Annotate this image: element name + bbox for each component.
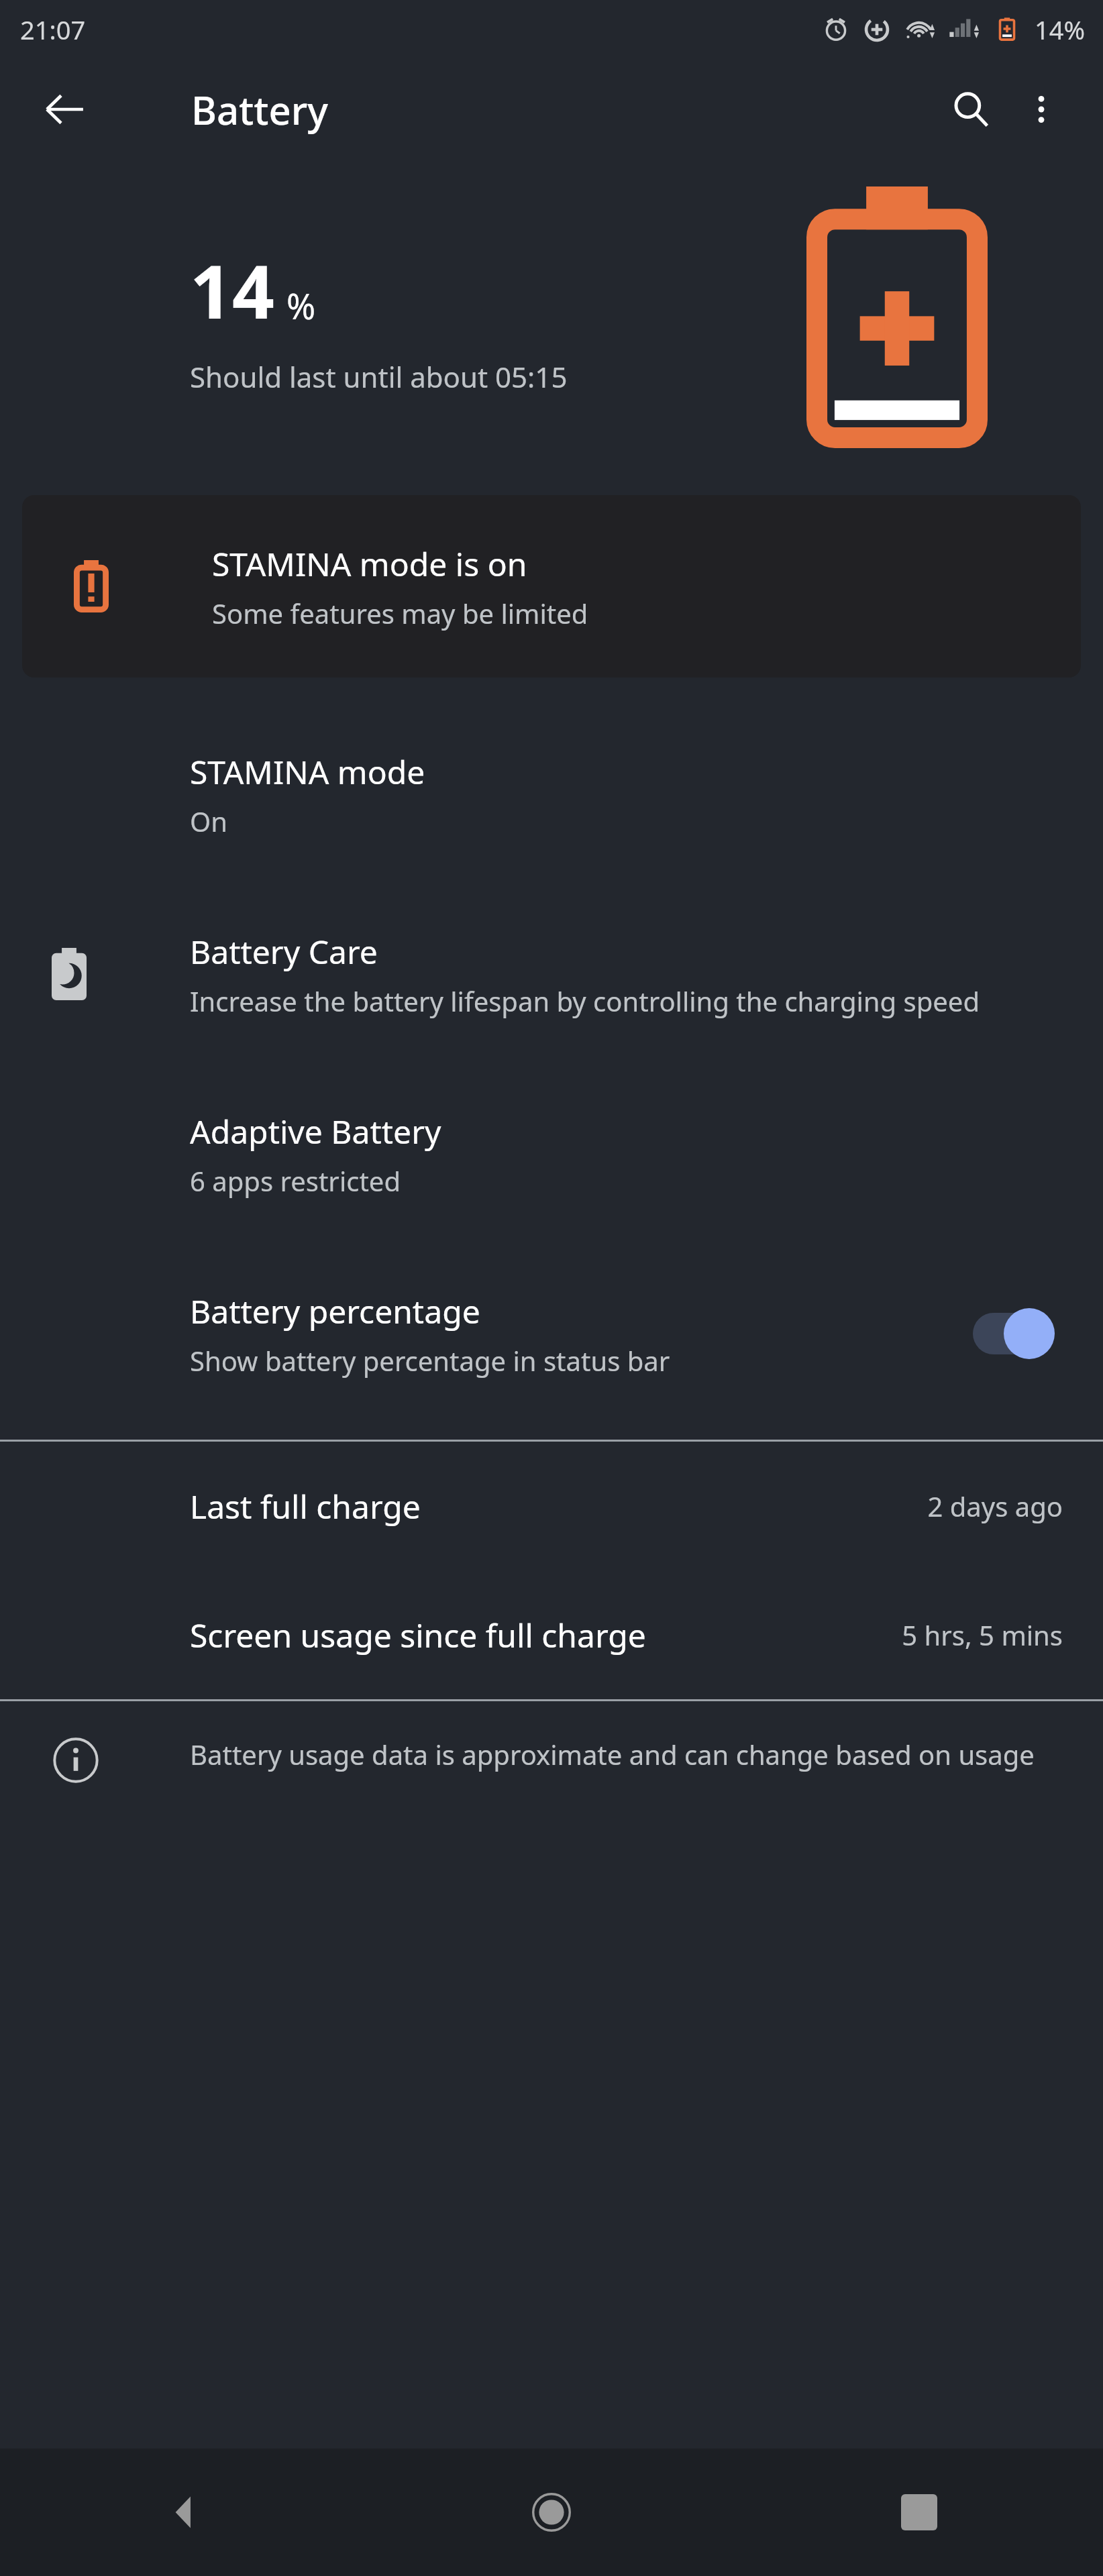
staticText: 2 days ago [927, 1488, 1063, 1524]
staticText: Show battery percentage in status bar [190, 1342, 670, 1379]
staticText: On [190, 803, 227, 839]
staticText: STAMINA mode [190, 750, 425, 794]
staticText: % [286, 282, 316, 329]
staticText: Battery usage data is approximate and ca… [190, 1736, 1035, 1772]
staticText: 6 apps restricted [190, 1163, 401, 1199]
button[interactable]: Battery percentage [0, 1244, 1103, 1424]
staticText: Increase the battery lifespan by control… [190, 983, 980, 1019]
staticText: 21:07 [20, 12, 86, 47]
button[interactable]: Adaptive Battery [0, 1064, 1103, 1244]
button[interactable]: Recent apps [735, 2449, 1103, 2576]
button[interactable]: Battery percentage toggle, on [969, 1307, 1056, 1360]
button[interactable]: Back [32, 77, 97, 142]
button[interactable]: Battery Care [0, 884, 1103, 1064]
button[interactable]: Search [934, 72, 1008, 146]
button[interactable]: More options [1008, 76, 1075, 143]
staticText: Screen usage since full charge [190, 1613, 646, 1657]
button[interactable]: STAMINA mode is on [22, 495, 1081, 678]
staticText: 5 hrs, 5 mins [902, 1617, 1063, 1653]
staticText: 14% [1035, 12, 1086, 47]
button[interactable]: STAMINA mode [0, 704, 1103, 884]
button[interactable]: Screen usage since full charge [0, 1570, 1103, 1699]
staticText: Should last until about 05:15 [190, 358, 568, 396]
button[interactable]: Home [368, 2449, 735, 2576]
staticText: 14 [190, 239, 274, 340]
staticText: Battery Care [190, 930, 378, 973]
staticText: Battery percentage [190, 1289, 480, 1333]
staticText: Some features may be limited [212, 595, 588, 631]
button[interactable]: Back [0, 2449, 368, 2576]
staticText: Last full charge [190, 1485, 421, 1528]
staticText: Battery [191, 83, 328, 136]
staticText: Adaptive Battery [190, 1110, 441, 1153]
staticText: STAMINA mode is on [212, 542, 527, 586]
button[interactable]: Last full charge [0, 1442, 1103, 1570]
